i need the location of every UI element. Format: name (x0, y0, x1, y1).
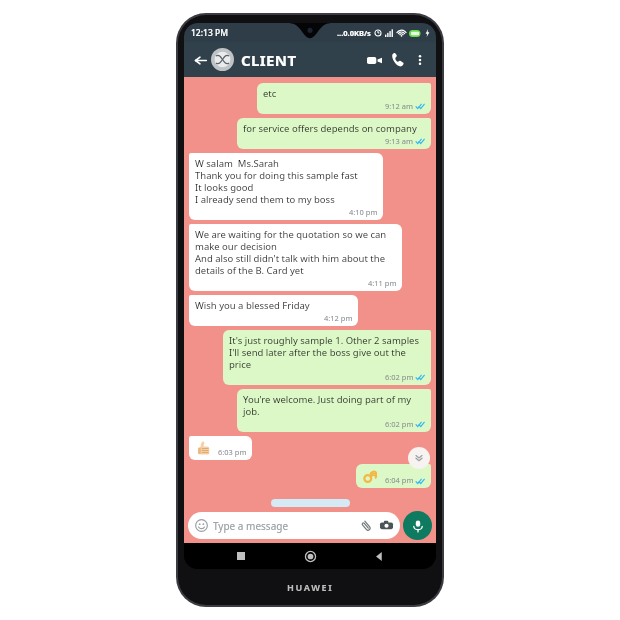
staticText: 6:02 pm (385, 419, 414, 429)
staticText: 4:10 pm (349, 207, 378, 217)
staticText: 12:13 PM (191, 27, 228, 39)
button[interactable]: 6:03 pm (189, 436, 252, 460)
button[interactable]: Back (367, 544, 391, 568)
staticText: Type a message (213, 519, 360, 533)
staticText: You're welcome. Just doing part of my jo… (243, 393, 426, 418)
button[interactable]: Type a message (188, 512, 400, 539)
button[interactable]: for service offers depends on company (237, 118, 431, 149)
staticText: ...0.0KB/s (337, 28, 371, 38)
staticText: 4:12 pm (324, 313, 353, 323)
button[interactable]: It's just roughly sample 1. Other 2 samp… (223, 330, 431, 385)
button[interactable]: etc (257, 83, 431, 114)
button[interactable]: You're welcome. Just doing part of my jo… (237, 389, 431, 432)
staticText: HUAWEI (287, 581, 334, 593)
button[interactable] (211, 48, 234, 71)
button[interactable]: We are waiting for the quotation so we c… (189, 224, 402, 291)
staticText: 6:04 pm (385, 475, 414, 485)
button[interactable]: More options (410, 50, 430, 70)
staticText: 6:03 pm (218, 447, 247, 457)
button[interactable]: Home (298, 544, 322, 568)
staticText: We are waiting for the quotation so we c… (195, 228, 397, 277)
button[interactable]: CLIENT (241, 50, 362, 70)
button[interactable]: Wish you a blessed Friday (189, 295, 358, 326)
button[interactable]: Record voice message (403, 511, 432, 540)
staticText: for service offers depends on company (243, 122, 417, 135)
staticText: Wish you a blessed Friday (195, 299, 310, 312)
button[interactable]: Voice call (386, 48, 410, 72)
button[interactable]: Recents (229, 544, 253, 568)
staticText: W salam Ms.Sarah Thank you for doing thi… (195, 157, 358, 206)
button[interactable]: Back (190, 50, 210, 70)
staticText: etc (263, 87, 277, 100)
button[interactable]: Video call (362, 48, 386, 72)
button[interactable]: Scroll to bottom (408, 447, 430, 469)
button[interactable]: W salam Ms.Sarah Thank you for doing thi… (189, 153, 383, 220)
staticText: It's just roughly sample 1. Other 2 samp… (229, 334, 426, 371)
button[interactable]: 6:04 pm (356, 464, 431, 488)
staticText: 9:12 am (385, 101, 414, 111)
staticText: 9:13 am (385, 136, 414, 146)
staticText: 6:02 pm (385, 372, 414, 382)
staticText: 4:11 pm (368, 278, 397, 288)
